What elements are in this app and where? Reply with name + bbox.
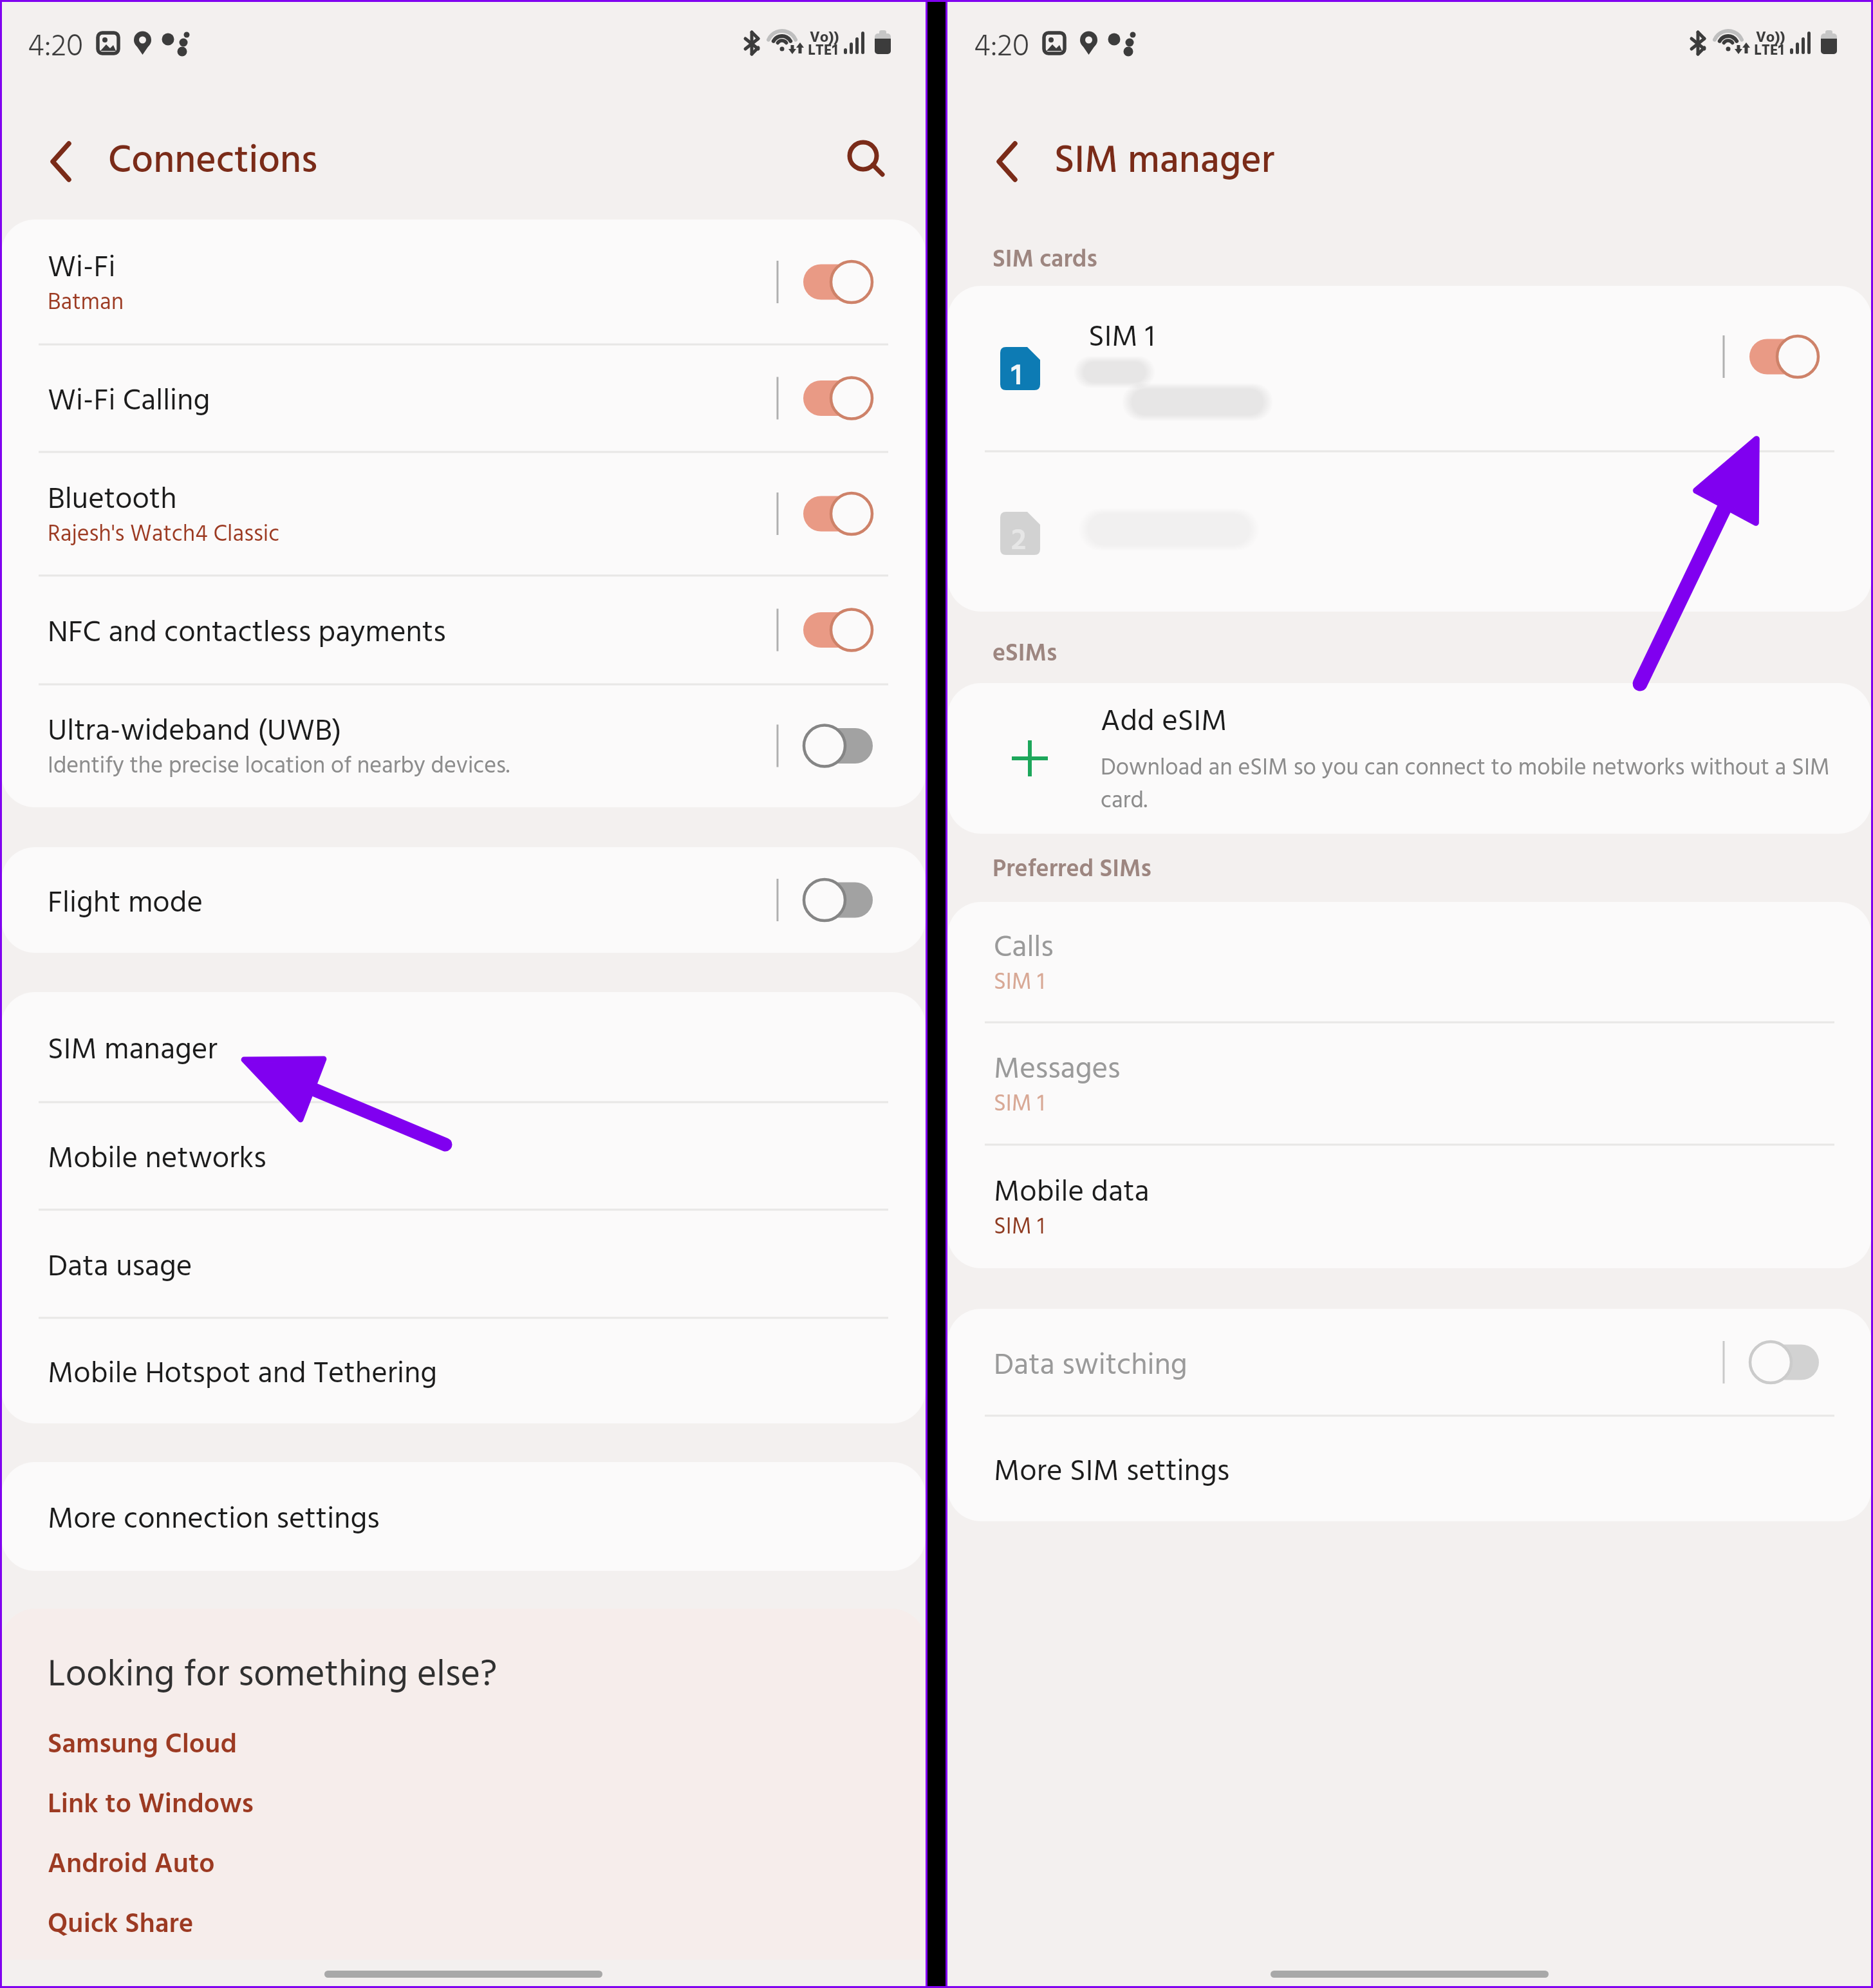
button[interactable]: Flight mode toggle: [771, 847, 893, 953]
staticText: Rajesh's Watch4 Classic: [48, 516, 280, 554]
staticText: Add eSIM: [1101, 698, 1227, 746]
staticText: eSIMs: [992, 635, 1058, 674]
staticText: More SIM settings: [994, 1448, 1230, 1496]
staticText: Connections: [108, 131, 318, 193]
staticText: NFC and contactless payments: [48, 609, 446, 657]
staticText: Preferred SIMs: [992, 850, 1151, 890]
button[interactable]: Navigate up: [966, 125, 1036, 194]
staticText: Android Auto: [48, 1843, 215, 1888]
button[interactable]: Mobile Hotspot and Tethering: [1, 1318, 926, 1423]
button[interactable]: Navigate up: [20, 125, 89, 194]
staticText: SIM 1: [994, 1086, 1045, 1123]
button[interactable]: Wi-Fi: [1, 220, 926, 344]
staticText: 4:20: [974, 23, 1029, 72]
button[interactable]: More connection settings: [1, 1462, 926, 1571]
button[interactable]: 2: [947, 451, 1872, 612]
button[interactable]: Link to Windows: [1, 1777, 926, 1837]
staticText: Vo)): [810, 26, 839, 50]
button[interactable]: SIM 1 toggle: [1717, 324, 1840, 389]
staticText: 1: [1011, 352, 1022, 400]
staticText: SIM cards: [992, 241, 1097, 280]
staticText: Data usage: [48, 1243, 192, 1291]
staticText: Identify the precise location of nearby …: [48, 748, 510, 785]
staticText: SIM 1: [1088, 314, 1155, 362]
staticText: Quick Share: [48, 1903, 194, 1947]
button[interactable]: Samsung Cloud: [1, 1717, 926, 1777]
staticText: SIM 1: [994, 964, 1045, 1002]
button[interactable]: Flight mode: [1, 847, 926, 953]
staticText: Bluetooth: [48, 476, 177, 524]
staticText: Flight mode: [48, 879, 203, 928]
staticText: Mobile Hotspot and Tethering: [48, 1350, 438, 1398]
staticText: Wi-Fi Calling: [48, 377, 210, 426]
button[interactable]: Mobile data: [947, 1145, 1872, 1268]
staticText: SIM 1: [994, 1209, 1045, 1246]
staticText: 2: [1011, 517, 1027, 565]
staticText: Mobile data: [994, 1168, 1150, 1217]
button[interactable]: 1: [947, 286, 1872, 451]
button[interactable]: Add eSIM: [947, 683, 1872, 834]
button[interactable]: Messages: [947, 1022, 1872, 1145]
staticText: Vo)): [1756, 26, 1785, 50]
staticText: Link to Windows: [48, 1783, 254, 1828]
staticText: Batman: [48, 285, 124, 322]
button[interactable]: Data switching toggle: [1717, 1309, 1840, 1416]
button[interactable]: Ultra-wideband (UWB) toggle: [771, 684, 893, 807]
staticText: Wi-Fi: [48, 244, 116, 292]
staticText: LTE1: [1754, 39, 1784, 63]
button[interactable]: Ultra-wideband (UWB): [1, 684, 926, 807]
staticText: Mobile networks: [48, 1135, 266, 1183]
staticText: Ultra-wideband (UWB): [48, 708, 342, 756]
staticText: Looking for something else?: [48, 1646, 498, 1706]
button[interactable]: Data switching: [947, 1309, 1872, 1416]
button[interactable]: More SIM settings: [947, 1416, 1872, 1521]
staticText: Samsung Cloud: [48, 1723, 237, 1768]
staticText: 4:20: [28, 23, 83, 72]
staticText: LTE1: [808, 39, 838, 63]
button[interactable]: Wi-Fi Calling toggle: [771, 344, 893, 452]
button[interactable]: Quick Share: [1, 1897, 926, 1956]
button[interactable]: NFC and contactless payments toggle: [771, 576, 893, 684]
staticText: Calls: [994, 924, 1054, 972]
button[interactable]: Wi-Fi toggle: [771, 220, 893, 344]
button[interactable]: Search: [828, 117, 899, 188]
button[interactable]: SIM manager: [1, 992, 926, 1102]
button[interactable]: Android Auto: [1, 1837, 926, 1897]
button[interactable]: Bluetooth toggle: [771, 452, 893, 576]
staticText: Download an eSIM so you can connect to m…: [1101, 750, 1860, 820]
button[interactable]: Wi-Fi Calling: [1, 344, 926, 452]
button[interactable]: Mobile networks: [1, 1102, 926, 1210]
button[interactable]: Bluetooth: [1, 452, 926, 576]
staticText: Messages: [994, 1046, 1121, 1094]
button[interactable]: NFC and contactless payments: [1, 576, 926, 684]
button[interactable]: Data usage: [1, 1210, 926, 1318]
staticText: SIM manager: [1054, 131, 1275, 193]
button[interactable]: Calls: [947, 902, 1872, 1022]
staticText: Data switching: [994, 1342, 1188, 1390]
staticText: More connection settings: [48, 1496, 380, 1544]
staticText: SIM manager: [48, 1026, 218, 1074]
